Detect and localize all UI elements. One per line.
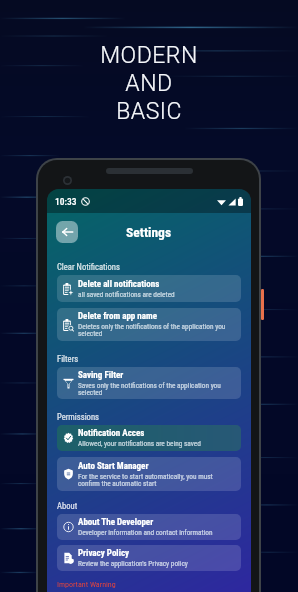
staticText: About [57, 501, 78, 511]
staticText: 10:33 [55, 196, 77, 207]
staticText: Review the application's Privacy policy [78, 559, 188, 568]
staticText: Clear Notifications [57, 262, 120, 272]
staticText: Auto Start Manager [78, 461, 149, 472]
staticText: Privacy Policy [78, 548, 130, 559]
staticText: BASIC [116, 98, 182, 125]
staticText: Deletes only the notifications of the ap… [78, 322, 234, 338]
staticText: Allowed, your notifications are being sa… [78, 439, 201, 448]
staticText: Saves only the notifications of the appl… [78, 381, 234, 397]
button[interactable]: Notification Acces [57, 425, 241, 451]
staticText: Developer information and contact inform… [78, 528, 213, 537]
staticText: Filters [57, 354, 79, 364]
button[interactable]: Privacy Policy [57, 545, 241, 571]
button[interactable]: Back [56, 221, 78, 243]
staticText: Saving Filter [78, 370, 124, 381]
button[interactable]: Saving Filter [57, 367, 241, 399]
staticText: For the service to start automatically, … [78, 472, 234, 488]
staticText: MODERN [100, 42, 198, 69]
staticText: Permissions [57, 412, 100, 422]
staticText: Notification Acces [78, 428, 145, 439]
button[interactable]: Delete from app name [57, 308, 241, 341]
button[interactable]: Auto Start Manager [57, 457, 241, 491]
button[interactable]: Delete all notifications [57, 275, 241, 302]
staticText: Delete all notifications [78, 279, 160, 290]
staticText: Delete from app name [78, 311, 158, 322]
staticText: AND [125, 70, 173, 97]
staticText: all saved notifications are deleted [78, 290, 175, 299]
staticText: About The Developer [78, 517, 154, 528]
staticText: Settings [126, 224, 172, 240]
staticText: Important Warning [57, 580, 116, 589]
button[interactable]: About The Developer [57, 514, 241, 540]
